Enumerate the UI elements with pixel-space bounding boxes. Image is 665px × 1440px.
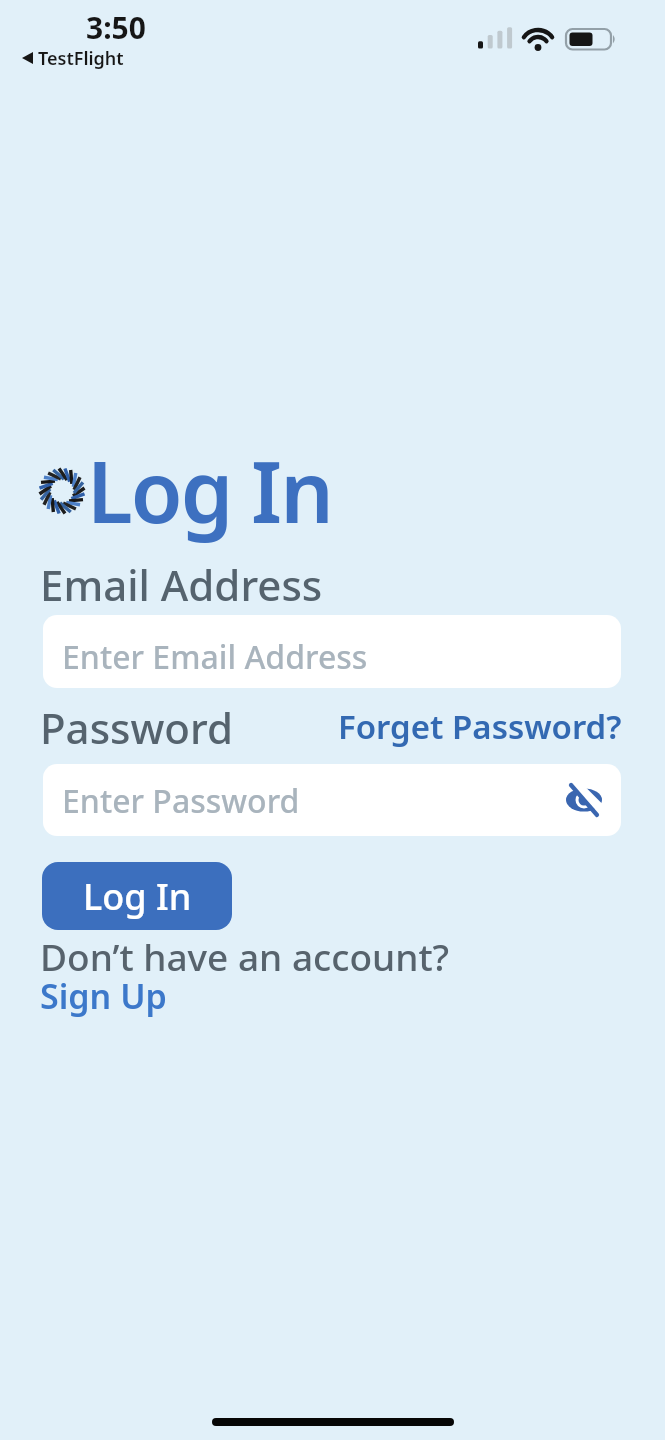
staticText: 3:50 [86, 7, 146, 48]
staticText: Log In [87, 433, 332, 547]
button[interactable]: Forget Password? [338, 704, 622, 749]
staticText: Don’t have an account? [40, 931, 450, 981]
button[interactable]: Enter Email Address [43, 615, 621, 688]
staticText: Password [40, 699, 233, 756]
button[interactable]: Enter Password [43, 764, 621, 836]
button[interactable]: Log In [42, 862, 232, 930]
staticText: Email Address [40, 556, 323, 613]
staticText: Enter Password [62, 779, 300, 823]
staticText: Log In [83, 872, 192, 921]
button[interactable]: Sign Up [40, 973, 167, 1019]
staticText: Enter Email Address [62, 635, 368, 679]
staticText: TestFlight [38, 46, 124, 71]
button[interactable] [562, 778, 606, 822]
